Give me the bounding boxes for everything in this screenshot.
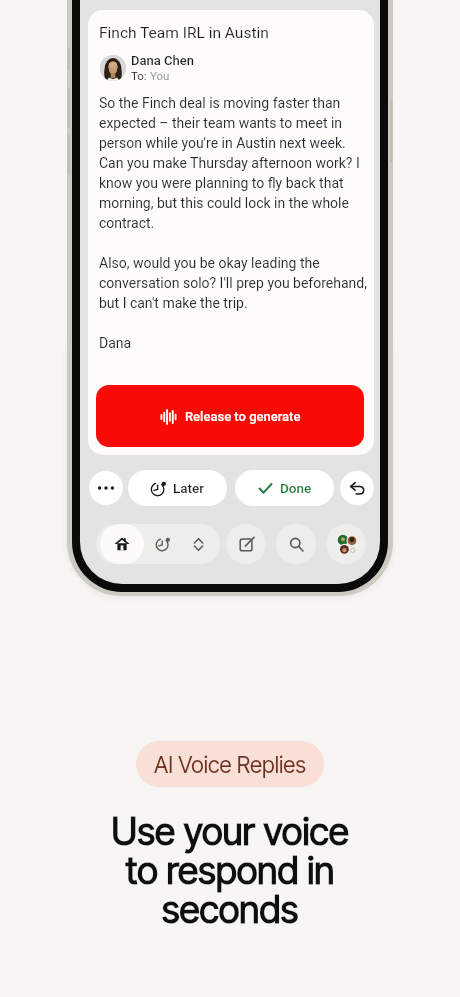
button[interactable]: Done (235, 470, 334, 506)
button[interactable]: Snooze (144, 524, 182, 564)
button[interactable]: Later (128, 470, 227, 506)
staticText: So the Finch deal is moving faster than … (99, 95, 365, 231)
button[interactable]: Home (100, 524, 144, 564)
staticText: Also, would you be okay leading the conv… (99, 255, 374, 311)
staticText: Release to generate (185, 409, 301, 424)
button[interactable]: Search (276, 524, 316, 564)
button[interactable]: Sort (182, 524, 214, 564)
staticText: Later (173, 480, 205, 496)
staticText: You (150, 69, 170, 82)
staticText: Dana Chen (131, 53, 194, 68)
button[interactable]: Profile (326, 524, 366, 564)
staticText: To: (131, 69, 150, 82)
staticText: Finch Team IRL in Austin (99, 24, 269, 42)
button[interactable]: AI Voice Replies (136, 741, 324, 787)
button[interactable]: More options (89, 471, 123, 505)
staticText: Use your voice to respond in seconds (0, 809, 460, 932)
button[interactable]: Undo (340, 471, 374, 505)
staticText: Done (280, 480, 312, 496)
button[interactable]: Compose (226, 524, 266, 564)
button[interactable]: Release to generate (96, 385, 364, 447)
staticText: AI Voice Replies (154, 751, 306, 778)
staticText: Dana (99, 335, 132, 351)
